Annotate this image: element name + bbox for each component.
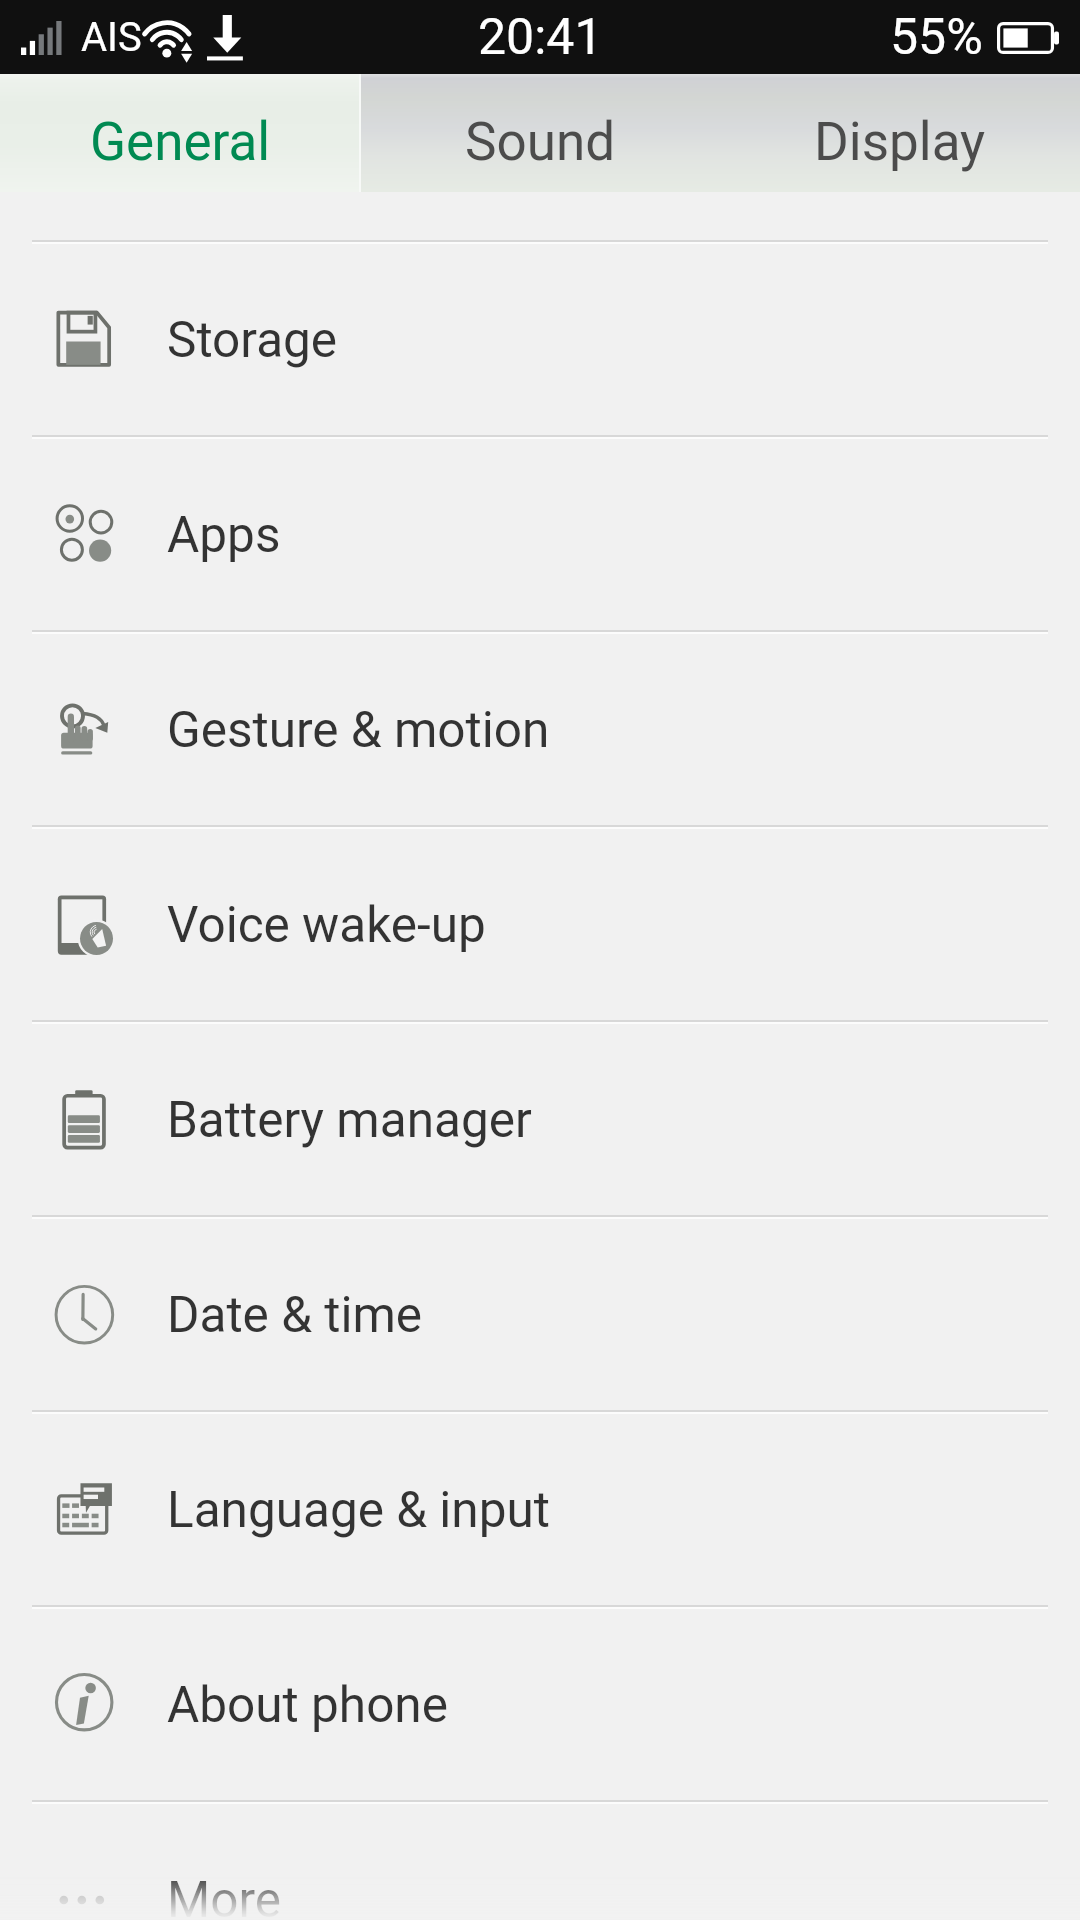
staticText: General [90,111,271,173]
button[interactable]: Date & time [0,1219,1080,1410]
staticText: Apps [167,506,281,564]
button[interactable]: Gesture & motion [0,634,1080,825]
staticText: 55% [890,8,983,67]
staticText: Language & input [167,1481,550,1539]
button[interactable]: General [0,74,360,192]
button[interactable]: Storage [0,244,1080,435]
button[interactable]: More [0,1804,1080,1920]
staticText: Storage [167,311,338,369]
staticText: Voice wake-up [167,896,486,954]
staticText: Sound [465,111,616,173]
button[interactable]: About phone [0,1609,1080,1800]
staticText: Gesture & motion [167,701,550,759]
button[interactable]: Battery manager [0,1024,1080,1215]
button[interactable]: Language & input [0,1414,1080,1605]
staticText: More [167,1871,282,1920]
button[interactable]: Display [720,74,1080,192]
button[interactable]: Apps [0,439,1080,630]
staticText: AIS [81,14,142,61]
staticText: Date & time [167,1286,423,1344]
staticText: Battery manager [167,1091,532,1149]
staticText: Display [814,111,986,173]
button[interactable]: Sound [360,74,720,192]
button[interactable]: Voice wake-up [0,829,1080,1020]
staticText: 20:41 [478,8,603,67]
staticText: About phone [167,1676,448,1734]
